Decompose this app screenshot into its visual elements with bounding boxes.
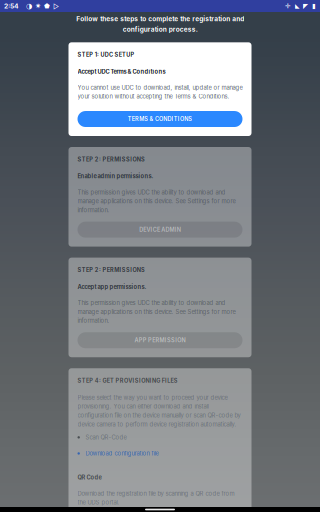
button[interactable]: Download configuration file	[77, 450, 242, 457]
staticText: You cannot use UDC to download, install,…	[77, 84, 242, 100]
staticText: Accept app permissions.	[77, 283, 146, 290]
staticText: ✛	[285, 2, 291, 10]
staticText: This permission gives UDC the ability to…	[77, 299, 235, 324]
button[interactable]: APP PERMISSION	[77, 332, 242, 348]
staticText: 2:54	[4, 2, 19, 10]
staticText: ✷	[35, 2, 41, 10]
staticText: Scan QR-Code	[85, 434, 126, 441]
staticText: STEP 2: PERMISSIONS	[77, 156, 145, 163]
staticText: TERMS & CONDITIONS	[128, 116, 192, 122]
staticText: ▮	[312, 2, 316, 10]
staticText: Enable admin permissions.	[77, 173, 153, 180]
staticText: QR Code	[77, 474, 101, 481]
staticText: Follow these steps to complete the regis…	[76, 15, 244, 33]
staticText: ▷	[53, 2, 59, 10]
button[interactable]: DEVICE ADMIN	[77, 222, 242, 238]
staticText: APP PERMISSION	[134, 337, 185, 344]
staticText: STEP 2: PERMISSIONS	[77, 267, 145, 273]
staticText: Accept UDC Terms & Conditions	[77, 68, 165, 75]
staticText: Download the registration file by scanni…	[77, 490, 234, 506]
staticText: ◑	[26, 2, 32, 10]
staticText: ◣	[295, 2, 300, 9]
staticText: Download configuration file	[85, 450, 158, 457]
staticText: ⬟	[44, 2, 50, 10]
staticText: This permission gives UDC the ability to…	[77, 189, 235, 214]
button[interactable]: TERMS & CONDITIONS	[77, 111, 242, 127]
staticText: DEVICE ADMIN	[139, 226, 181, 233]
staticText: Please select the way you want to procee…	[77, 394, 240, 428]
staticText: STEP 4: GET PROVISIONING FILES	[77, 377, 178, 384]
staticText: STEP 1: UDC SETUP	[77, 51, 134, 58]
staticText: ◤	[303, 2, 308, 10]
